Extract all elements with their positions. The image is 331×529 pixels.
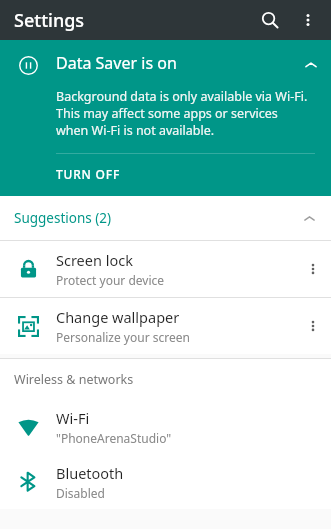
staticText: Data Saver is on	[56, 52, 291, 74]
staticText: Settings	[14, 8, 85, 33]
staticText: Wi-Fi	[56, 408, 90, 428]
button[interactable]: TURN OFF	[0, 154, 331, 196]
staticText: Personalize your screen	[56, 329, 190, 345]
button[interactable]: Data Saver is on	[0, 40, 331, 80]
staticText: "PhoneArenaStudio"	[56, 430, 172, 446]
staticText: Disabled	[56, 485, 105, 501]
staticText: Screen lock	[56, 250, 133, 270]
button[interactable]: More options	[295, 241, 331, 297]
button[interactable]: More options	[295, 298, 331, 354]
button[interactable]: Change wallpaper	[0, 298, 331, 354]
staticText: Background data is only available via Wi…	[56, 88, 313, 139]
other: Collapse suggestions	[287, 196, 331, 240]
other: Collapse	[291, 52, 331, 78]
staticText: Wireless & networks	[14, 371, 134, 388]
staticText: TURN OFF	[56, 166, 121, 182]
staticText: Protect your device	[56, 272, 165, 288]
button[interactable]: Search	[251, 1, 289, 39]
staticText: Change wallpaper	[56, 307, 180, 327]
button[interactable]: Suggestions (2)	[0, 196, 331, 240]
staticText: Bluetooth	[56, 463, 124, 483]
staticText: Suggestions (2)	[14, 209, 287, 227]
button[interactable]: Wi-Fi	[0, 399, 331, 454]
button[interactable]: Screen lock	[0, 241, 331, 297]
button[interactable]: Bluetooth	[0, 454, 331, 509]
button[interactable]: More options	[289, 1, 327, 39]
